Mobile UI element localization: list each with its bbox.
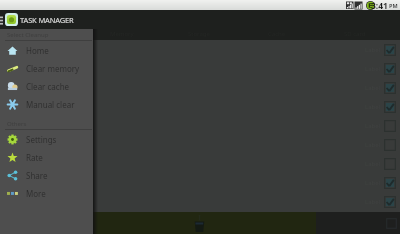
staticText: PM <box>389 2 398 9</box>
button[interactable]: Rate <box>0 148 93 166</box>
button[interactable]: Label <box>0 135 400 154</box>
staticText: Clear cache <box>26 81 70 92</box>
button[interactable]: Label <box>0 78 400 97</box>
staticText: Settings <box>26 134 57 145</box>
button[interactable]: Label <box>0 192 400 211</box>
button[interactable]: Manual clear <box>0 95 93 113</box>
staticText: 3:41 <box>371 0 388 10</box>
button[interactable]: Label <box>0 40 400 59</box>
staticText: Home <box>26 45 49 56</box>
staticText: Others <box>7 120 27 128</box>
button[interactable]: Label <box>0 97 400 116</box>
button[interactable]: Open navigation drawer <box>0 10 3 29</box>
button[interactable]: Share <box>0 166 93 184</box>
button[interactable]: Label <box>0 154 400 173</box>
button[interactable]: Label <box>0 59 400 78</box>
staticText: Rate <box>26 152 43 163</box>
button[interactable]: More <box>0 184 93 202</box>
staticText: TASK MANAGER <box>20 15 74 25</box>
staticText: Clear memory <box>26 63 80 74</box>
button[interactable]: Settings <box>0 130 93 148</box>
staticText: Apps <box>37 30 52 38</box>
staticText: More <box>26 188 46 199</box>
button[interactable]: Clear cache <box>0 77 93 95</box>
staticText: Manual clear <box>26 99 75 110</box>
button[interactable]: Label <box>0 173 400 192</box>
button[interactable]: Label <box>0 116 400 135</box>
button[interactable]: Clear memory <box>0 59 93 77</box>
button[interactable]: Clean now <box>0 212 316 234</box>
staticText: Select Cleanup <box>7 31 49 39</box>
button[interactable]: Home <box>0 41 93 59</box>
staticText: Share <box>26 170 48 181</box>
